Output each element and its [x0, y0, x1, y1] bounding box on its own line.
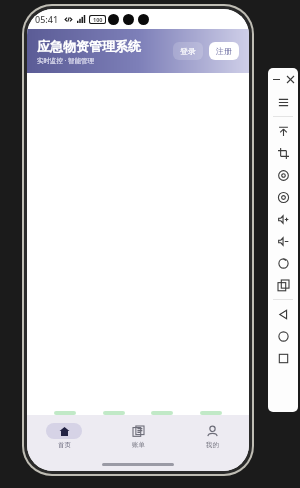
button[interactable]: 账单 [101, 415, 175, 457]
staticText: 注册 [216, 46, 232, 56]
staticText: 100 [93, 16, 103, 23]
button[interactable]: Volume up [269, 208, 297, 230]
button[interactable]: 登录 [173, 42, 203, 60]
staticText: 首页 [58, 441, 71, 449]
button[interactable]: Back [269, 303, 297, 325]
button[interactable]: 首页 [27, 415, 101, 457]
button[interactable]: Crop [269, 142, 297, 164]
button[interactable]: Volume down [269, 230, 297, 252]
staticText: 账单 [132, 441, 145, 449]
button[interactable]: Recents [269, 347, 297, 369]
button[interactable]: Menu [269, 91, 297, 113]
staticText: 应急物资管理系统 [37, 38, 141, 54]
button[interactable]: Record [269, 164, 297, 186]
button[interactable]: Home [269, 325, 297, 347]
staticText: 我的 [206, 441, 219, 449]
button[interactable]: Minimise [271, 74, 281, 84]
staticText: 登录 [180, 46, 196, 56]
button[interactable]: Rotate [269, 252, 297, 274]
button[interactable]: Location [269, 186, 297, 208]
staticText: 实时监控 · 智能管理 [37, 56, 95, 65]
button[interactable]: 注册 [209, 42, 239, 60]
button[interactable]: Copy [269, 274, 297, 296]
staticText: 05:41 [35, 13, 59, 25]
button[interactable]: Scroll to top [269, 120, 297, 142]
button[interactable]: 我的 [175, 415, 249, 457]
button[interactable]: Close [285, 74, 295, 84]
